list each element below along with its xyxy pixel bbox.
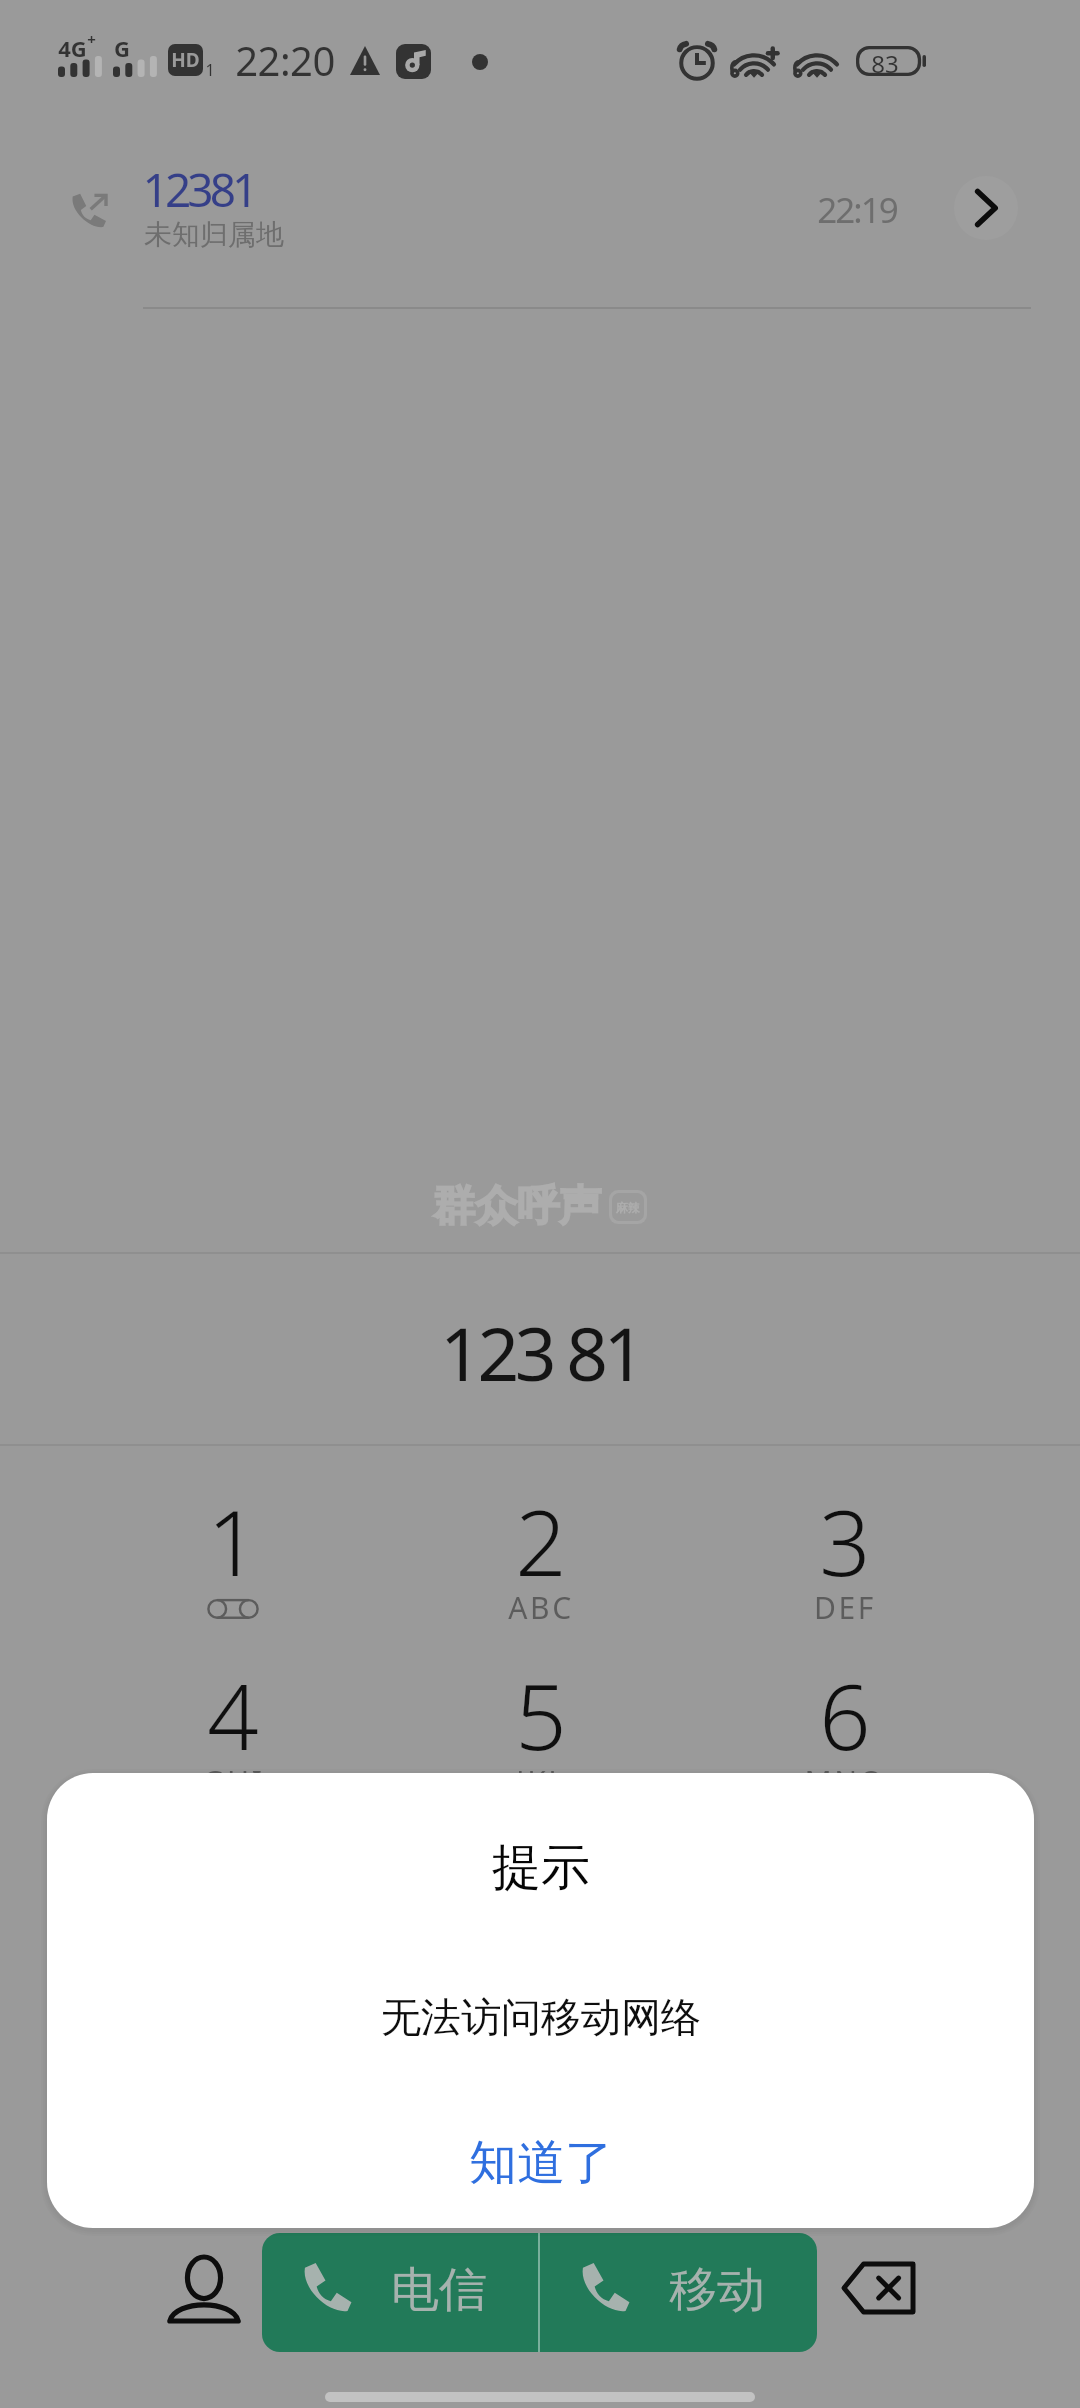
button[interactable]: 知道了 [47,2111,1034,2215]
staticText: 12381 [142,158,255,221]
staticText: 4G [58,33,87,63]
staticText: 群众呼声 [433,1180,601,1233]
button[interactable]: Contacts [162,2248,246,2330]
staticText: 无法访问移动网络 [381,1992,701,2042]
button[interactable]: 4 [93,1654,373,1826]
staticText: GHI [202,1761,265,1802]
button[interactable]: 6 [705,1654,985,1826]
staticText: 1 [207,1480,259,1603]
staticText: 2 [515,1480,567,1603]
button[interactable]: 12381 [0,130,1080,307]
button[interactable]: 移动 [540,2233,817,2352]
staticText: 83 [871,47,899,80]
staticText: 1 [205,59,215,81]
staticText: 电信 [391,2260,487,2320]
staticText: 6 [819,1654,871,1777]
staticText: 22:19 [817,186,897,234]
staticText: 未知归属地 [144,217,284,252]
button[interactable]: Call details [954,176,1018,240]
button[interactable]: 3 [705,1480,985,1652]
staticText: G [114,33,130,63]
staticText: JKL [516,1761,567,1802]
staticText: 移动 [669,2260,765,2320]
staticText: 4 [207,1654,259,1777]
staticText: + [87,29,96,49]
staticText: ABC [508,1587,574,1628]
button[interactable]: 电信 [262,2233,538,2352]
button[interactable]: Backspace [833,2248,923,2328]
staticText: 123 81 [440,1303,641,1402]
staticText: MNO [804,1761,886,1802]
staticText: 22:20 [235,33,335,87]
button[interactable]: 2 [401,1480,681,1652]
staticText: HD [171,47,200,73]
staticText: 5 [515,1654,567,1777]
button[interactable]: 5 [401,1654,681,1826]
staticText: 3 [819,1480,871,1603]
staticText: 提示 [492,1837,590,1899]
staticText: 麻辣 [616,1200,640,1215]
button[interactable]: 1 [93,1480,373,1652]
staticText: DEF [814,1587,876,1628]
staticText: 知道了 [469,2133,613,2193]
